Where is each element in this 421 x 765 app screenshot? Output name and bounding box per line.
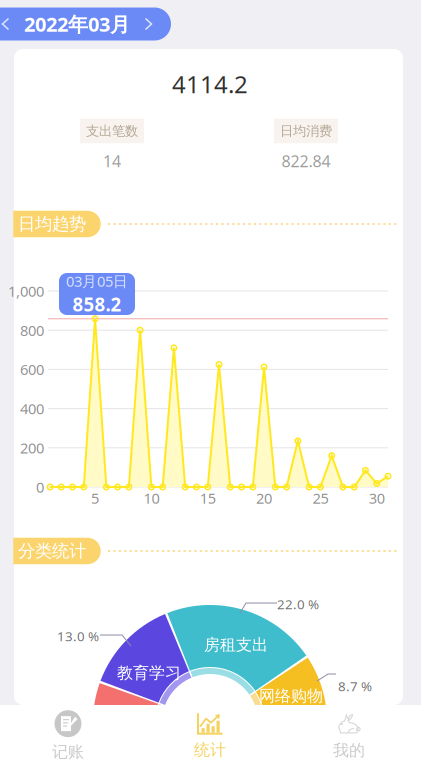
staticText: 858.2 bbox=[72, 292, 121, 317]
staticText: 5 bbox=[91, 488, 99, 508]
staticText: 30 bbox=[369, 488, 385, 508]
staticText: 日均趋势 bbox=[18, 213, 86, 235]
staticText: 分类统计 bbox=[18, 540, 86, 562]
staticText: 房租支出 bbox=[204, 635, 268, 655]
staticText: 10 bbox=[143, 488, 159, 508]
button[interactable]: 统计 bbox=[150, 708, 270, 764]
staticText: 600 bbox=[20, 360, 44, 379]
button[interactable]: 我的 bbox=[289, 708, 409, 764]
staticText: 统计 bbox=[194, 740, 226, 760]
staticText: 2022年03月 bbox=[24, 11, 130, 37]
staticText: 03月05日 bbox=[66, 271, 128, 291]
staticText: 200 bbox=[20, 438, 44, 458]
staticText: 20 bbox=[256, 488, 272, 508]
staticText: 800 bbox=[20, 320, 44, 340]
staticText: 22.0 % bbox=[277, 595, 319, 613]
staticText: 400 bbox=[20, 399, 44, 418]
staticText: 8.7 % bbox=[338, 677, 372, 695]
staticText: 13.0 % bbox=[57, 627, 99, 645]
staticText: 1,000 bbox=[8, 281, 44, 301]
staticText: 支出笔数 bbox=[86, 123, 138, 139]
staticText: 25 bbox=[312, 488, 328, 508]
staticText: 15 bbox=[200, 488, 216, 508]
staticText: 0 bbox=[36, 477, 44, 497]
staticText: 4114.2 bbox=[172, 68, 248, 100]
button[interactable]: 2022年03月 bbox=[0, 7, 171, 40]
staticText: 14 bbox=[103, 150, 121, 172]
staticText: 记账 bbox=[52, 742, 84, 762]
staticText: 我的 bbox=[333, 741, 365, 760]
staticText: 822.84 bbox=[281, 150, 330, 172]
staticText: 日均消费 bbox=[280, 123, 332, 139]
staticText: 教育学习 bbox=[117, 663, 181, 683]
staticText: 网络购物 bbox=[259, 686, 323, 706]
button[interactable]: 记账 bbox=[8, 708, 128, 764]
